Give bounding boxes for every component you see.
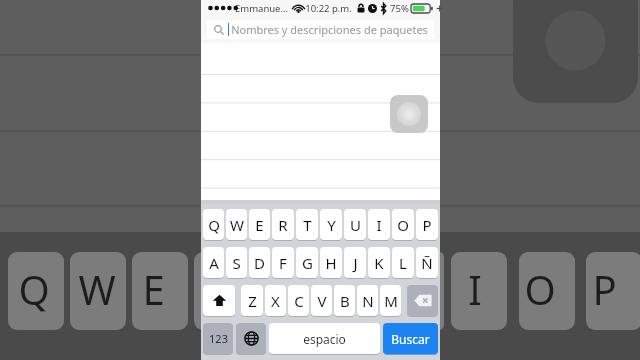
staticText: C (294, 291, 304, 311)
staticText: R (278, 215, 288, 235)
staticText: F (279, 253, 287, 273)
staticText: T (303, 215, 312, 235)
button[interactable]: I (368, 209, 390, 240)
staticText: H (325, 253, 337, 273)
staticText: 75% (390, 2, 409, 15)
staticText: 10:22 p.m. (305, 2, 352, 15)
button[interactable]: J (344, 247, 366, 278)
staticText: espacio (303, 331, 346, 347)
button[interactable]: R (272, 209, 294, 240)
staticText: W (78, 262, 116, 316)
staticText: N (362, 291, 374, 311)
staticText: O (524, 262, 556, 316)
staticText: L (399, 253, 407, 273)
other: Cambiar idioma (236, 323, 266, 354)
button[interactable]: A (203, 247, 224, 278)
button[interactable]: espacio (269, 323, 380, 354)
button[interactable]: O (392, 209, 414, 240)
button[interactable] (407, 285, 438, 316)
button[interactable]: U (344, 209, 366, 240)
other: Mayúsculas (203, 285, 235, 316)
staticText: V (317, 291, 327, 311)
staticText: W (230, 215, 244, 235)
staticText: Buscar (391, 331, 430, 347)
button[interactable] (236, 323, 266, 354)
button[interactable]: V (311, 285, 332, 316)
staticText: E (255, 215, 264, 235)
staticText: P (422, 215, 432, 235)
staticText: Z (248, 291, 257, 311)
staticText: Nombres y descripciones de paquetes (231, 22, 428, 37)
staticText: J (353, 253, 358, 273)
button[interactable]: F (272, 247, 294, 278)
staticText: Ñ (421, 253, 433, 273)
staticText: X (271, 291, 280, 311)
button[interactable]: N (357, 285, 378, 316)
button[interactable]: Nombres y descripciones de paquetes (207, 20, 434, 39)
button[interactable]: K (368, 247, 390, 278)
staticText: B (340, 291, 350, 311)
staticText: 123 (209, 331, 228, 346)
staticText: Q (18, 262, 50, 316)
staticText: D (254, 253, 265, 273)
button[interactable]: M (380, 285, 401, 316)
staticText: S (232, 253, 241, 273)
staticText: I (376, 215, 382, 235)
staticText: E (142, 262, 165, 316)
button[interactable]: Buscar (383, 323, 438, 354)
button[interactable]: S (226, 247, 247, 278)
staticText: I (468, 262, 482, 316)
button[interactable]: P (416, 209, 438, 240)
button[interactable] (203, 285, 235, 316)
button[interactable]: Z (241, 285, 263, 316)
button[interactable]: D (249, 247, 270, 278)
staticText: Y (327, 215, 336, 235)
button[interactable]: Q (203, 209, 224, 240)
other: Cargando (390, 95, 428, 133)
button[interactable]: 123 (203, 323, 233, 354)
button[interactable]: Y (320, 209, 342, 240)
staticText: U (350, 215, 361, 235)
button[interactable]: G (296, 247, 318, 278)
staticText: O (397, 215, 409, 235)
button[interactable]: H (320, 247, 342, 278)
button[interactable]: T (296, 209, 318, 240)
button[interactable]: C (288, 285, 309, 316)
staticText: M (384, 291, 398, 311)
staticText: P (592, 262, 617, 316)
staticText: A (209, 253, 219, 273)
staticText: Q (208, 215, 220, 235)
button[interactable]: X (265, 285, 286, 316)
other: Borrar (407, 285, 438, 316)
button[interactable]: W (226, 209, 247, 240)
staticText: G (302, 253, 313, 273)
staticText: K (374, 253, 384, 273)
button[interactable]: L (392, 247, 414, 278)
staticText: Emmanue… (235, 2, 288, 15)
button[interactable]: Ñ (416, 247, 438, 278)
button[interactable]: B (334, 285, 355, 316)
button[interactable]: E (249, 209, 270, 240)
